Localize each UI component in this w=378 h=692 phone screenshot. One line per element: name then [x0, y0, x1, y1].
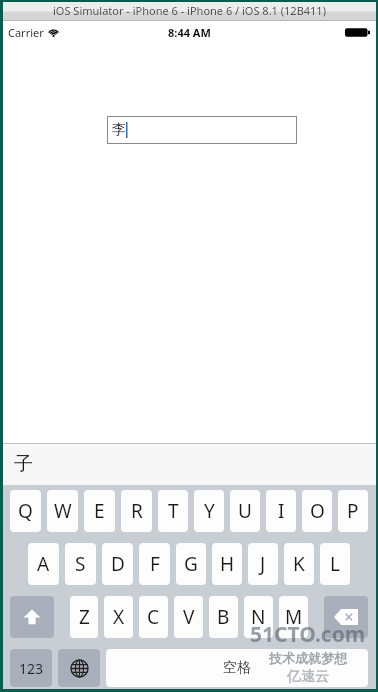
- staticText: L: [330, 551, 340, 577]
- button[interactable]: S: [65, 543, 96, 585]
- staticText: iOS Simulator - iPhone 6 - iPhone 6 / iO…: [53, 3, 326, 18]
- staticText: 123: [19, 659, 44, 678]
- staticText: T: [168, 498, 179, 524]
- button[interactable]: Change keyboard: [58, 649, 100, 687]
- staticText: H: [220, 551, 235, 577]
- button[interactable]: T: [158, 490, 188, 532]
- staticText: P: [347, 498, 359, 524]
- staticText: 51CTO.com: [250, 620, 366, 649]
- button[interactable]: Y: [194, 490, 224, 532]
- staticText: Z: [79, 604, 90, 630]
- button[interactable]: O: [302, 490, 332, 532]
- button[interactable]: R: [121, 490, 152, 532]
- button[interactable]: I: [266, 490, 296, 532]
- staticText: 空格: [223, 659, 251, 677]
- staticText: 技术成就梦想: [269, 650, 347, 666]
- button[interactable]: N: [244, 596, 273, 638]
- button[interactable]: G: [176, 543, 206, 585]
- staticText: U: [238, 498, 252, 524]
- staticText: E: [94, 498, 105, 524]
- staticText: W: [54, 498, 72, 524]
- staticText: Y: [204, 498, 215, 524]
- staticText: 子: [14, 452, 33, 476]
- button[interactable]: H: [212, 543, 242, 585]
- staticText: D: [111, 551, 125, 577]
- button[interactable]: J: [248, 543, 278, 585]
- button[interactable]: 子: [0, 443, 378, 485]
- staticText: 8:44 AM: [168, 25, 211, 40]
- staticText: I: [278, 498, 285, 524]
- staticText: 李: [112, 121, 126, 139]
- button[interactable]: C: [139, 596, 168, 638]
- staticText: B: [217, 604, 230, 630]
- staticText: G: [184, 551, 198, 577]
- button[interactable]: E: [84, 490, 115, 532]
- staticText: C: [147, 604, 160, 630]
- button[interactable]: Q: [10, 490, 41, 532]
- staticText: N: [251, 604, 266, 630]
- button[interactable]: Z: [70, 596, 98, 638]
- button[interactable]: 123: [10, 649, 52, 687]
- staticText: K: [293, 551, 305, 577]
- button[interactable]: X: [104, 596, 133, 638]
- button[interactable]: F: [139, 543, 170, 585]
- staticText: R: [131, 498, 143, 524]
- button[interactable]: U: [230, 490, 260, 532]
- button[interactable]: Backspace: [324, 596, 368, 638]
- button[interactable]: K: [284, 543, 314, 585]
- button[interactable]: M: [279, 596, 308, 638]
- button[interactable]: B: [209, 596, 238, 638]
- button[interactable]: 李: [107, 116, 297, 144]
- staticText: A: [37, 551, 50, 577]
- button[interactable]: W: [47, 490, 78, 532]
- staticText: M: [285, 604, 303, 630]
- button[interactable]: Shift: [10, 596, 54, 638]
- button[interactable]: L: [320, 543, 350, 585]
- staticText: Q: [18, 498, 33, 524]
- button[interactable]: D: [102, 543, 133, 585]
- staticText: O: [310, 498, 325, 524]
- staticText: Carrier: [8, 25, 44, 40]
- button[interactable]: A: [28, 543, 59, 585]
- staticText: F: [150, 551, 160, 577]
- button[interactable]: P: [338, 490, 368, 532]
- staticText: J: [260, 551, 266, 577]
- button[interactable]: V: [174, 596, 203, 638]
- staticText: X: [113, 604, 125, 630]
- button[interactable]: 空格: [106, 649, 368, 687]
- staticText: 亿速云: [287, 668, 329, 686]
- staticText: V: [183, 604, 195, 630]
- staticText: S: [75, 551, 86, 577]
